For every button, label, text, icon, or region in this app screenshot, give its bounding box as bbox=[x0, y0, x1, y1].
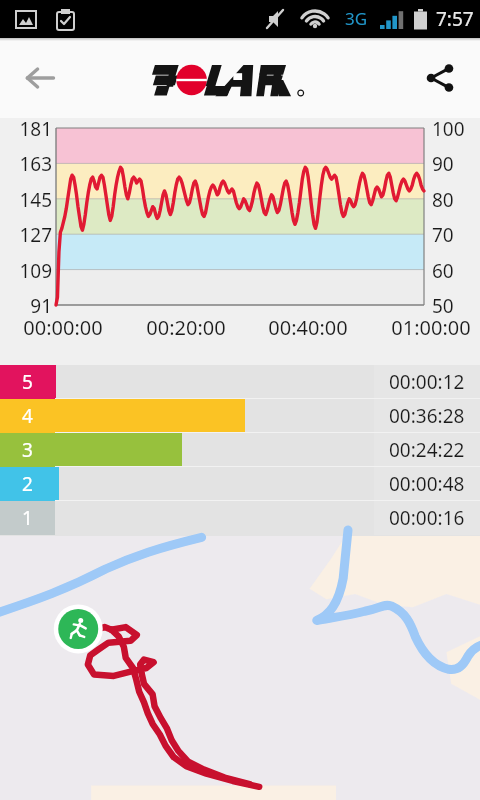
staticText: 01:00:00 bbox=[376, 314, 480, 341]
staticText: 00:40:00 bbox=[253, 314, 363, 341]
staticText: 7:57 bbox=[436, 6, 474, 32]
staticText: 2 bbox=[22, 471, 33, 497]
staticText: 00:24:22 bbox=[389, 437, 465, 463]
staticText: 181 bbox=[0, 116, 52, 142]
staticText: 50 bbox=[432, 293, 480, 319]
staticText: 4 bbox=[22, 403, 33, 429]
staticText: 00:00:16 bbox=[389, 505, 465, 531]
button[interactable]: Share bbox=[412, 50, 468, 106]
staticText: 145 bbox=[0, 187, 52, 213]
button[interactable]: 1 bbox=[0, 501, 480, 535]
staticText: 90 bbox=[432, 151, 480, 177]
staticText: 1 bbox=[22, 505, 33, 531]
staticText: 100 bbox=[432, 116, 480, 142]
button[interactable]: 5 bbox=[0, 365, 480, 399]
button[interactable]: 3 bbox=[0, 433, 480, 467]
staticText: 70 bbox=[432, 222, 480, 248]
staticText: 109 bbox=[0, 258, 52, 284]
staticText: 5 bbox=[22, 369, 33, 395]
button[interactable]: Route map bbox=[0, 536, 480, 800]
staticText: 80 bbox=[432, 187, 480, 213]
staticText: 00:20:00 bbox=[131, 314, 241, 341]
button[interactable]: 4 bbox=[0, 399, 480, 433]
staticText: 00:00:00 bbox=[8, 314, 118, 341]
staticText: 163 bbox=[0, 151, 52, 177]
staticText: 00:00:48 bbox=[389, 471, 465, 497]
staticText: 00:00:12 bbox=[389, 369, 465, 395]
staticText: 3G bbox=[345, 7, 368, 30]
staticText: 91 bbox=[0, 293, 52, 319]
button[interactable]: 2 bbox=[0, 467, 480, 501]
staticText: 00:36:28 bbox=[389, 403, 465, 429]
button[interactable]: Back bbox=[12, 50, 68, 106]
staticText: 127 bbox=[0, 222, 52, 248]
staticText: 60 bbox=[432, 258, 480, 284]
staticText: 3 bbox=[22, 437, 33, 463]
